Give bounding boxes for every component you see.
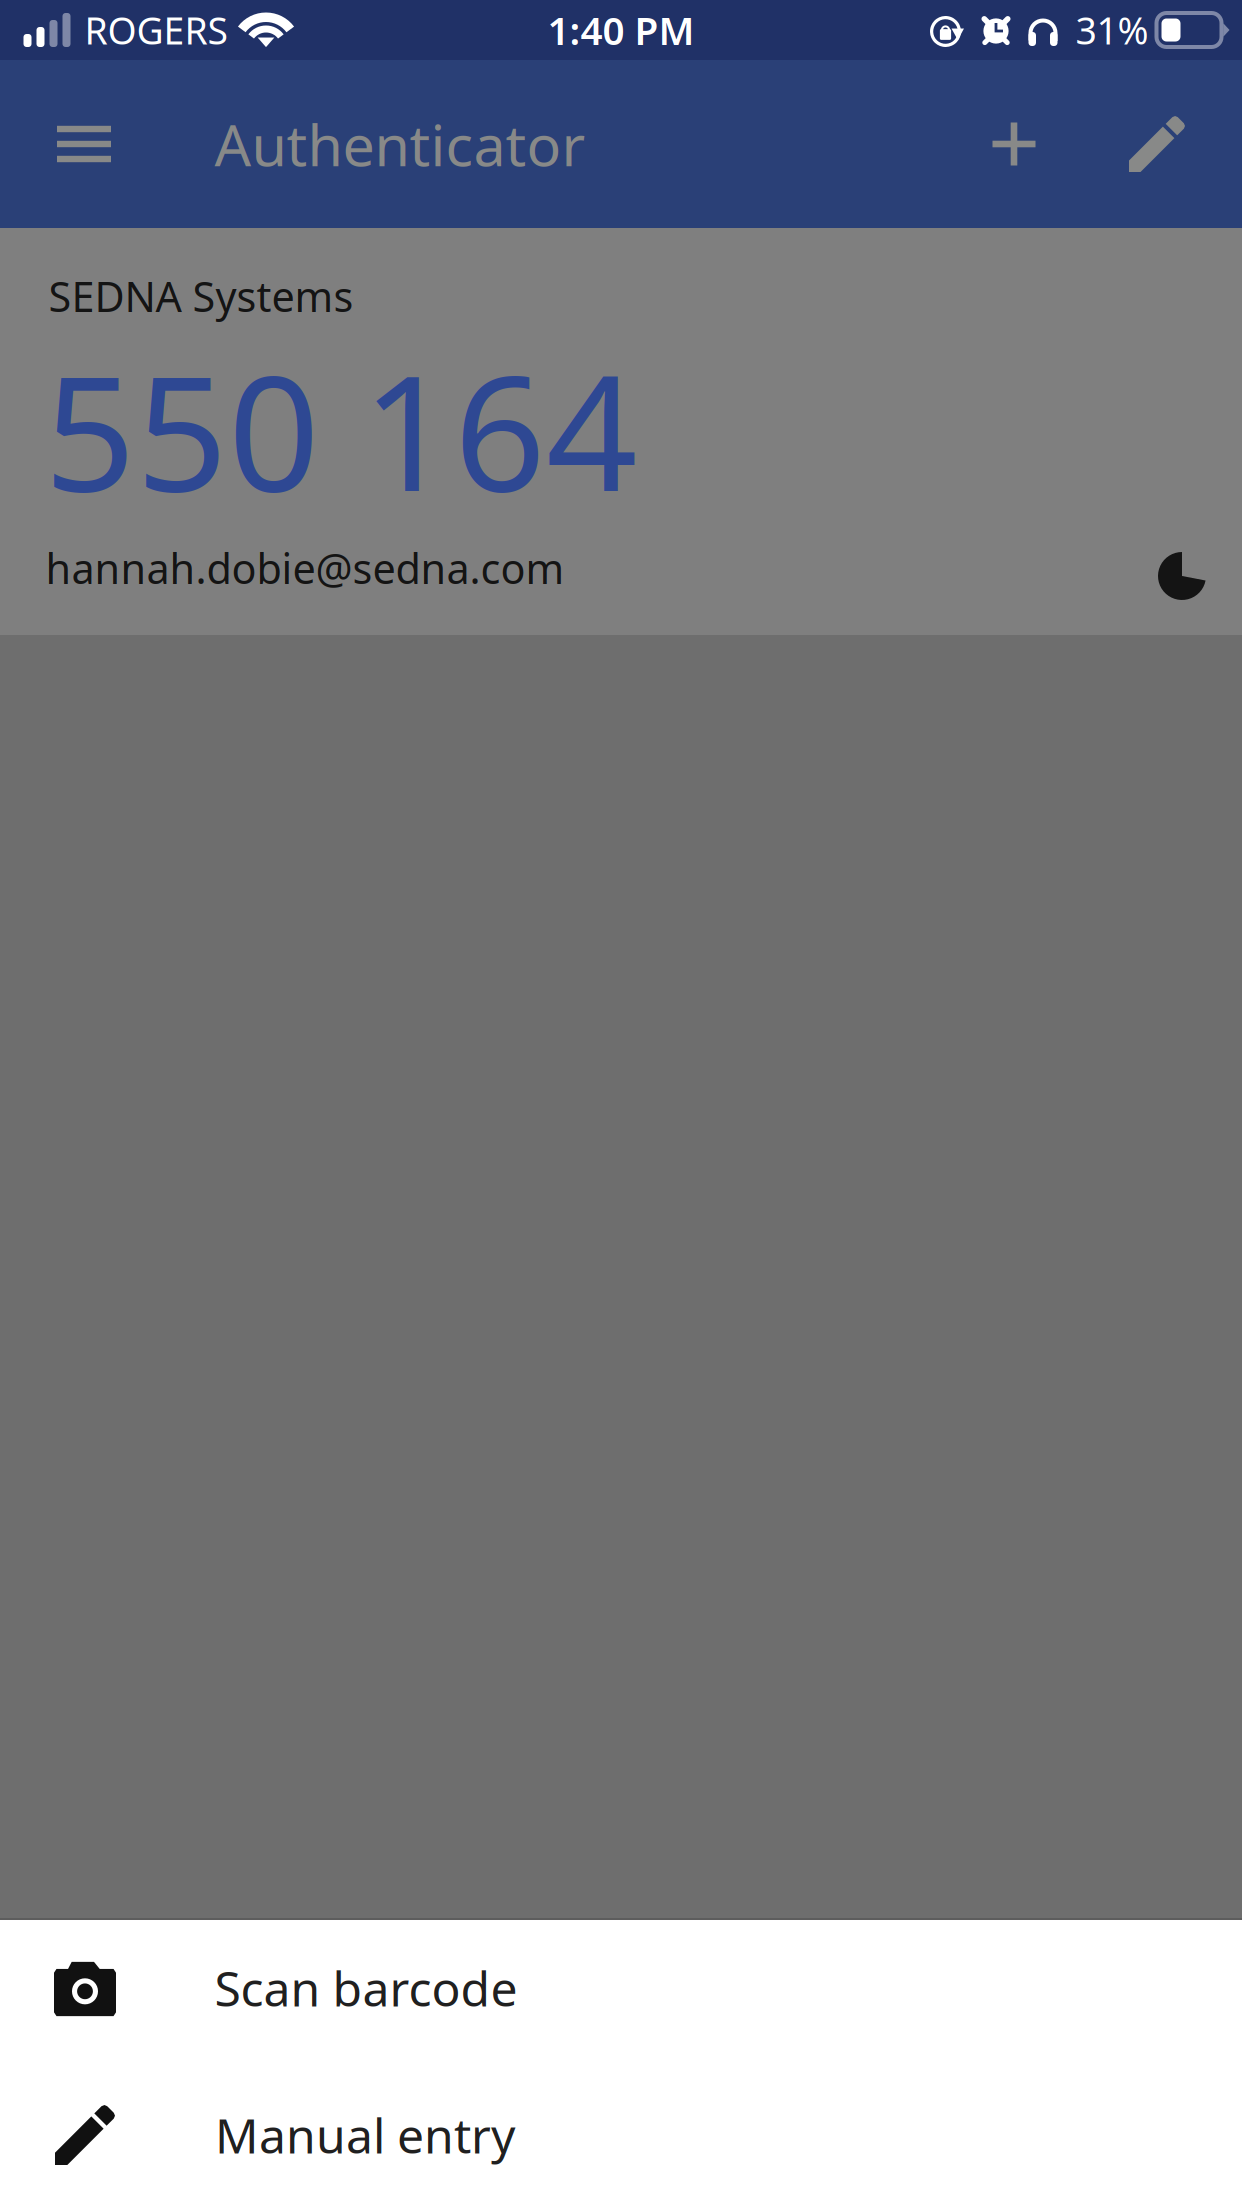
staticText: ROGERS (84, 5, 227, 55)
staticText: 550 164 (44, 323, 638, 535)
staticText: SEDNA Systems (48, 269, 353, 323)
button[interactable]: Edit (1095, 60, 1219, 228)
button[interactable]: Add account (954, 60, 1074, 228)
staticText: 31% (1075, 5, 1148, 55)
staticText: hannah.dobie@sedna.com (45, 541, 564, 595)
staticText: Manual entry (215, 2103, 515, 2167)
staticText: Authenticator (214, 106, 585, 182)
staticText: Scan barcode (214, 1956, 517, 2020)
button[interactable]: Menu (19, 60, 149, 228)
button[interactable]: Manual entry (0, 2070, 1242, 2208)
button[interactable]: Scan barcode (0, 1920, 1242, 2070)
staticText: 1:40 PM (547, 4, 694, 56)
